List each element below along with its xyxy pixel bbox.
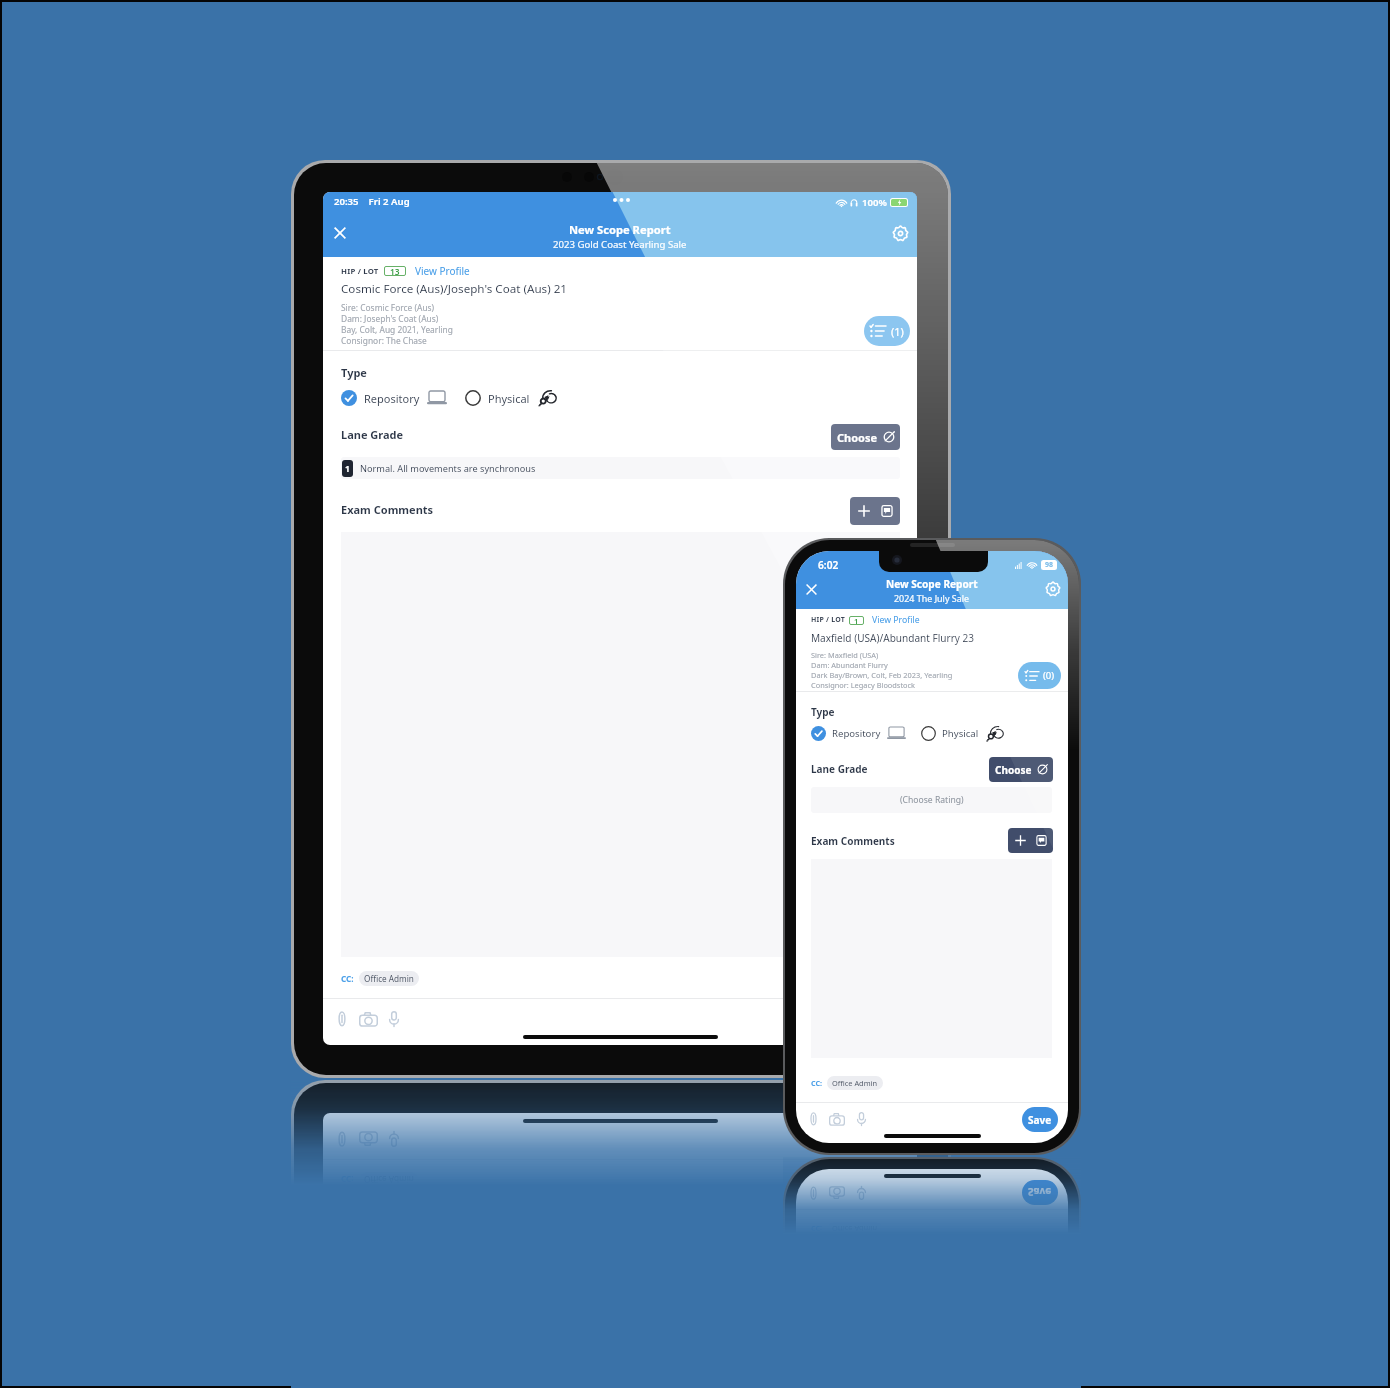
- staticText: Dark Bay/Brown, Colt, Feb 2023, Yearling: [811, 670, 953, 680]
- button[interactable]: Take photo: [357, 1128, 379, 1150]
- staticText: Office Admin: [832, 1078, 878, 1088]
- staticText: Save: [1028, 1185, 1052, 1199]
- staticText: Dam: Joseph's Coat (Aus): [341, 313, 439, 324]
- button[interactable]: View Profile: [415, 264, 470, 278]
- button[interactable]: [850, 497, 900, 525]
- button[interactable]: Close: [329, 222, 351, 244]
- button[interactable]: Attach file: [331, 1008, 353, 1030]
- staticText: CC:: [811, 1224, 823, 1234]
- button[interactable]: Office Admin: [359, 971, 419, 986]
- button[interactable]: [1008, 828, 1053, 853]
- button[interactable]: (0): [1018, 662, 1061, 689]
- staticText: (Choose Rating): [900, 794, 964, 806]
- button[interactable]: Record audio: [383, 1008, 405, 1030]
- staticText: 13: [390, 266, 400, 276]
- button[interactable]: [341, 532, 900, 957]
- staticText: 100%: [862, 196, 887, 209]
- button[interactable]: Record audio: [851, 1109, 871, 1129]
- button[interactable]: Save: [1022, 1180, 1058, 1205]
- staticText: 1: [854, 616, 859, 625]
- button[interactable]: Office Admin: [359, 1172, 419, 1187]
- staticText: Type: [341, 365, 367, 380]
- staticText: 98: [1045, 560, 1054, 570]
- button[interactable]: Attach file: [803, 1109, 823, 1129]
- button[interactable]: Record audio: [851, 1183, 871, 1203]
- staticText: HIP / LOT: [811, 615, 845, 625]
- staticText: 2023 Gold Coast Yearling Sale: [553, 238, 687, 251]
- button[interactable]: Repository: [341, 390, 447, 406]
- staticText: Normal. All movements are synchronous: [360, 462, 536, 475]
- staticText: 20:35 Fri 2 Aug: [334, 195, 410, 208]
- staticText: Exam Comments: [811, 834, 895, 848]
- button[interactable]: Settings: [889, 222, 911, 244]
- button[interactable]: View Profile: [872, 614, 920, 626]
- button[interactable]: (1): [864, 316, 910, 346]
- staticText: 6:02: [818, 558, 839, 572]
- button[interactable]: [341, 1201, 900, 1388]
- staticText: Repository: [364, 391, 420, 406]
- staticText: Sire: Maxfield (USA): [811, 650, 879, 660]
- staticText: CC:: [341, 1174, 354, 1185]
- staticText: Maxfield (USA)/Abundant Flurry 23: [811, 631, 975, 645]
- staticText: Consignor: Legacy Bloodstock: [811, 680, 916, 690]
- staticText: Physical: [488, 391, 530, 406]
- button[interactable]: Take photo: [827, 1109, 847, 1129]
- button[interactable]: Close: [800, 578, 822, 600]
- staticText: CC:: [811, 1078, 823, 1088]
- staticText: (0): [1043, 669, 1055, 682]
- button[interactable]: Settings: [1042, 578, 1064, 600]
- staticText: Type: [811, 705, 835, 719]
- button[interactable]: Take photo: [357, 1008, 379, 1030]
- button[interactable]: Physical: [465, 387, 558, 409]
- staticText: (1): [891, 324, 904, 339]
- staticText: Office Admin: [832, 1224, 878, 1234]
- button[interactable]: Repository: [811, 726, 906, 741]
- button[interactable]: Physical: [921, 723, 1005, 744]
- staticText: Office Admin: [364, 973, 414, 984]
- staticText: 1: [345, 463, 350, 475]
- button[interactable]: Choose: [831, 424, 900, 450]
- staticText: Lane Grade: [341, 427, 404, 442]
- staticText: Physical: [942, 727, 979, 740]
- staticText: View Profile: [415, 264, 470, 278]
- staticText: New Scope Report: [886, 577, 978, 591]
- staticText: HIP / LOT: [341, 266, 379, 277]
- button[interactable]: Take photo: [827, 1183, 847, 1203]
- button[interactable]: Office Admin: [827, 1222, 883, 1236]
- staticText: Save: [1028, 1113, 1052, 1127]
- staticText: Choose: [995, 763, 1032, 777]
- button[interactable]: Attach file: [803, 1183, 823, 1203]
- staticText: Consignor: The Chase: [341, 335, 427, 346]
- staticText: Cosmic Force (Aus)/Joseph's Coat (Aus) 2…: [341, 281, 568, 297]
- staticText: Choose: [837, 430, 878, 445]
- staticText: New Scope Report: [569, 222, 671, 237]
- staticText: 2024 The July Sale: [894, 592, 970, 604]
- staticText: Repository: [832, 727, 881, 740]
- staticText: View Profile: [872, 614, 920, 626]
- staticText: Sire: Cosmic Force (Aus): [341, 302, 435, 313]
- staticText: Dam: Abundant Flurry: [811, 660, 888, 670]
- staticText: Office Admin: [364, 1174, 414, 1185]
- staticText: CC:: [341, 973, 354, 984]
- staticText: Lane Grade: [811, 762, 868, 776]
- button[interactable]: Office Admin: [827, 1076, 883, 1090]
- staticText: Bay, Colt, Aug 2021, Yearling: [341, 324, 453, 335]
- button[interactable]: Attach file: [331, 1128, 353, 1150]
- button[interactable]: Save: [1022, 1107, 1058, 1132]
- button[interactable]: Choose: [989, 757, 1053, 782]
- button[interactable]: Record audio: [383, 1128, 405, 1150]
- staticText: Exam Comments: [341, 502, 434, 517]
